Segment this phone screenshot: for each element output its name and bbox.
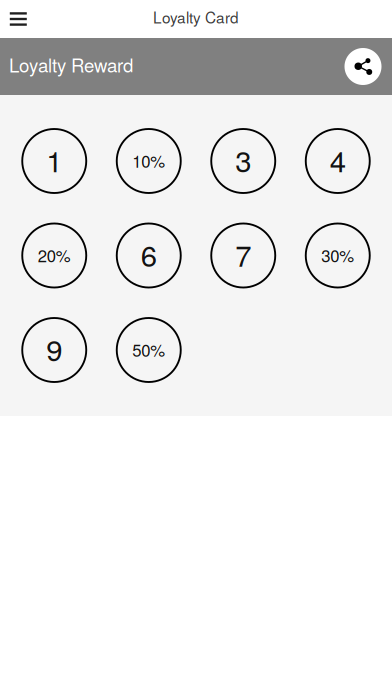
staticText: 1 <box>46 138 62 180</box>
button[interactable]: Share <box>344 48 381 85</box>
button[interactable]: Menu <box>0 0 36 38</box>
staticText: 30% <box>321 243 354 267</box>
staticText: 7 <box>235 233 251 275</box>
staticText: 4 <box>330 138 346 180</box>
button[interactable]: 3 <box>211 129 275 193</box>
button[interactable]: 10% <box>117 129 181 193</box>
button[interactable]: 50% <box>117 318 181 382</box>
button[interactable]: 6 <box>117 223 181 287</box>
staticText: 10% <box>132 149 165 172</box>
staticText: 20% <box>38 243 71 267</box>
staticText: Loyalty Reward <box>9 51 133 78</box>
button[interactable]: 9 <box>22 318 86 382</box>
staticText: Loyalty Card <box>153 6 239 28</box>
button[interactable]: 20% <box>22 223 86 287</box>
staticText: 6 <box>141 233 157 275</box>
staticText: 9 <box>46 327 62 369</box>
button[interactable]: 1 <box>22 129 86 193</box>
staticText: 3 <box>235 138 251 180</box>
button[interactable]: 4 <box>306 129 370 193</box>
button[interactable]: 7 <box>211 223 275 287</box>
staticText: 50% <box>132 338 165 361</box>
button[interactable]: 30% <box>306 223 370 287</box>
